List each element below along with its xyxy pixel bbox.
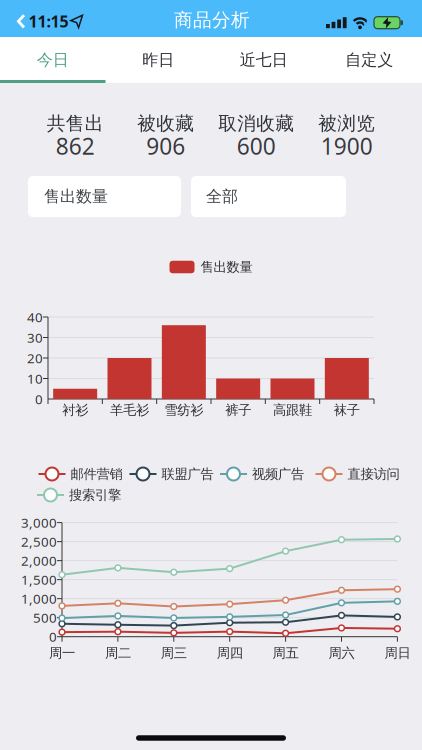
staticText: 全部 (206, 187, 238, 206)
staticText: 500 (33, 609, 57, 626)
staticText: 衬衫 (62, 402, 88, 418)
button[interactable]: 视频广告 (220, 466, 304, 482)
staticText: 1,000 (21, 590, 57, 607)
staticText: 视频广告 (252, 466, 304, 482)
staticText: 0 (35, 390, 43, 408)
button[interactable]: 售出数量 (169, 259, 252, 275)
staticText: 联盟广告 (161, 466, 213, 482)
staticText: 商品分析 (174, 8, 250, 31)
staticText: 周日 (384, 645, 410, 661)
staticText: 10 (27, 370, 43, 387)
staticText: 906 (146, 131, 185, 161)
staticText: 取消收藏 (218, 112, 294, 135)
button[interactable]: 联盟广告 (129, 466, 213, 482)
staticText: 周四 (217, 645, 243, 661)
staticText: 被收藏 (137, 112, 194, 135)
staticText: 3,000 (21, 514, 57, 531)
staticText: 1,500 (21, 571, 57, 588)
staticText: 昨日 (142, 50, 174, 70)
staticText: 邮件营销 (70, 466, 122, 482)
button[interactable]: 自定义 (316, 37, 422, 83)
staticText: 40 (27, 308, 43, 326)
staticText: 自定义 (345, 50, 393, 70)
staticText: 售出数量 (44, 187, 108, 206)
button[interactable]: 今日 (0, 37, 105, 83)
staticText: 周二 (105, 645, 131, 661)
staticText: 雪纺衫 (164, 402, 203, 418)
button[interactable]: 直接访问 (315, 466, 399, 482)
staticText: 共售出 (47, 112, 104, 135)
staticText: 售出数量 (200, 259, 252, 275)
staticText: 0 (49, 628, 57, 645)
staticText: 袜子 (334, 402, 360, 418)
staticText: 周三 (161, 645, 187, 661)
staticText: 600 (237, 131, 276, 161)
button[interactable]: 搜索引擎 (37, 487, 121, 503)
button[interactable]: 近七日 (211, 37, 316, 83)
staticText: 30 (27, 329, 43, 346)
staticText: 2,000 (21, 552, 57, 569)
button[interactable]: 全部 (191, 176, 346, 217)
staticText: 11:15 (28, 11, 68, 32)
staticText: 周六 (328, 645, 354, 661)
staticText: 被浏览 (318, 112, 375, 135)
button[interactable]: 售出数量 (28, 176, 181, 217)
staticText: 1900 (321, 131, 373, 161)
staticText: 20 (27, 349, 43, 367)
staticText: 搜索引擎 (69, 487, 121, 503)
button[interactable]: Back (0, 0, 422, 750)
staticText: 2,500 (21, 533, 57, 550)
staticText: 裤子 (225, 402, 251, 418)
staticText: 周一 (49, 645, 75, 661)
staticText: 周五 (273, 645, 299, 661)
button[interactable]: 昨日 (105, 37, 211, 83)
staticText: 高跟鞋 (273, 402, 312, 418)
staticText: 今日 (37, 50, 69, 70)
staticText: 近七日 (240, 50, 288, 70)
staticText: 羊毛衫 (110, 402, 149, 418)
button[interactable]: 邮件营销 (38, 466, 122, 482)
staticText: 862 (56, 131, 95, 161)
staticText: 直接访问 (347, 466, 399, 482)
